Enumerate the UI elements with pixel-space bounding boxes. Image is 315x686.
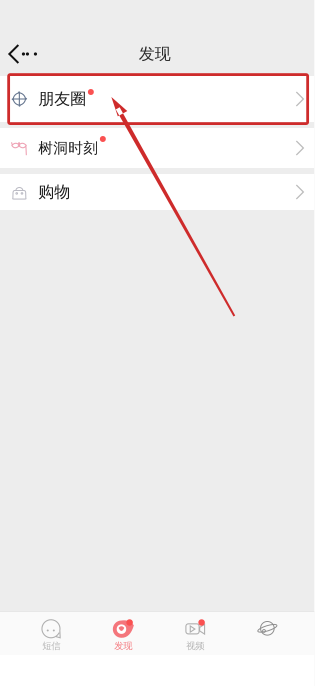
button[interactable]: 短信 [15, 612, 87, 655]
staticText: 发现 [114, 640, 132, 652]
staticText: 短信 [42, 640, 60, 652]
button[interactable]: Back [0, 38, 47, 70]
button[interactable] [231, 612, 303, 655]
staticText: 购物 [38, 182, 70, 202]
button[interactable]: 发现 [87, 612, 159, 655]
button[interactable]: 朋友圈 [0, 76, 314, 122]
button[interactable]: 树洞时刻 [0, 128, 314, 168]
button[interactable]: 视频 [159, 612, 231, 655]
staticText: 树洞时刻 [38, 139, 98, 157]
staticText: 视频 [186, 640, 204, 652]
staticText: 发现 [139, 44, 171, 64]
button[interactable]: 购物 [0, 174, 314, 210]
staticText: 朋友圈 [38, 89, 86, 109]
